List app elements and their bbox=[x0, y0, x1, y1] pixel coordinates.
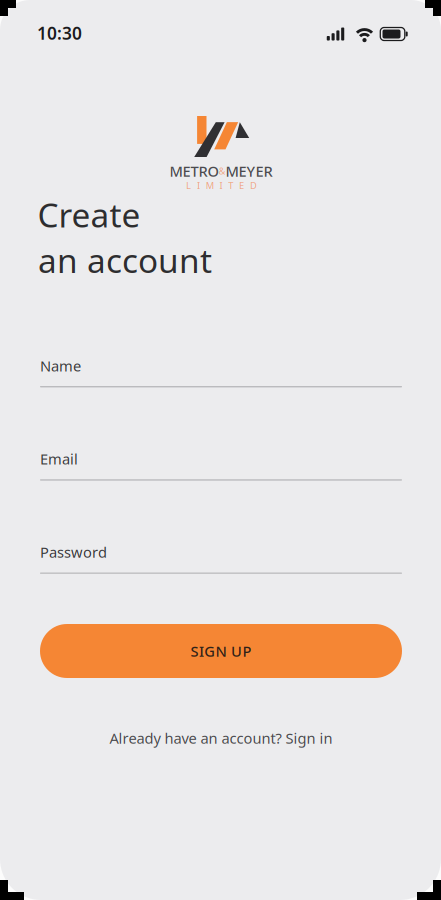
staticText: Name bbox=[40, 356, 81, 375]
button[interactable]: Email bbox=[40, 452, 402, 480]
staticText: SIGN UP bbox=[191, 641, 251, 661]
button[interactable]: Already have an account? Sign in bbox=[91, 723, 351, 753]
staticText: Email bbox=[40, 449, 78, 469]
button[interactable]: SIGN UP bbox=[40, 624, 402, 678]
staticText: Password bbox=[40, 542, 107, 562]
button[interactable]: Name bbox=[40, 359, 402, 387]
staticText: LIMITED bbox=[186, 179, 257, 192]
staticText: an account bbox=[38, 238, 212, 282]
staticText: MEYER bbox=[225, 161, 272, 181]
button[interactable]: Password bbox=[40, 545, 402, 574]
staticText: 10:30 bbox=[37, 21, 82, 44]
staticText: & bbox=[218, 165, 225, 177]
staticText: METRO bbox=[169, 161, 218, 181]
staticText: Create bbox=[37, 192, 140, 237]
staticText: Already have an account? Sign in bbox=[109, 728, 332, 748]
